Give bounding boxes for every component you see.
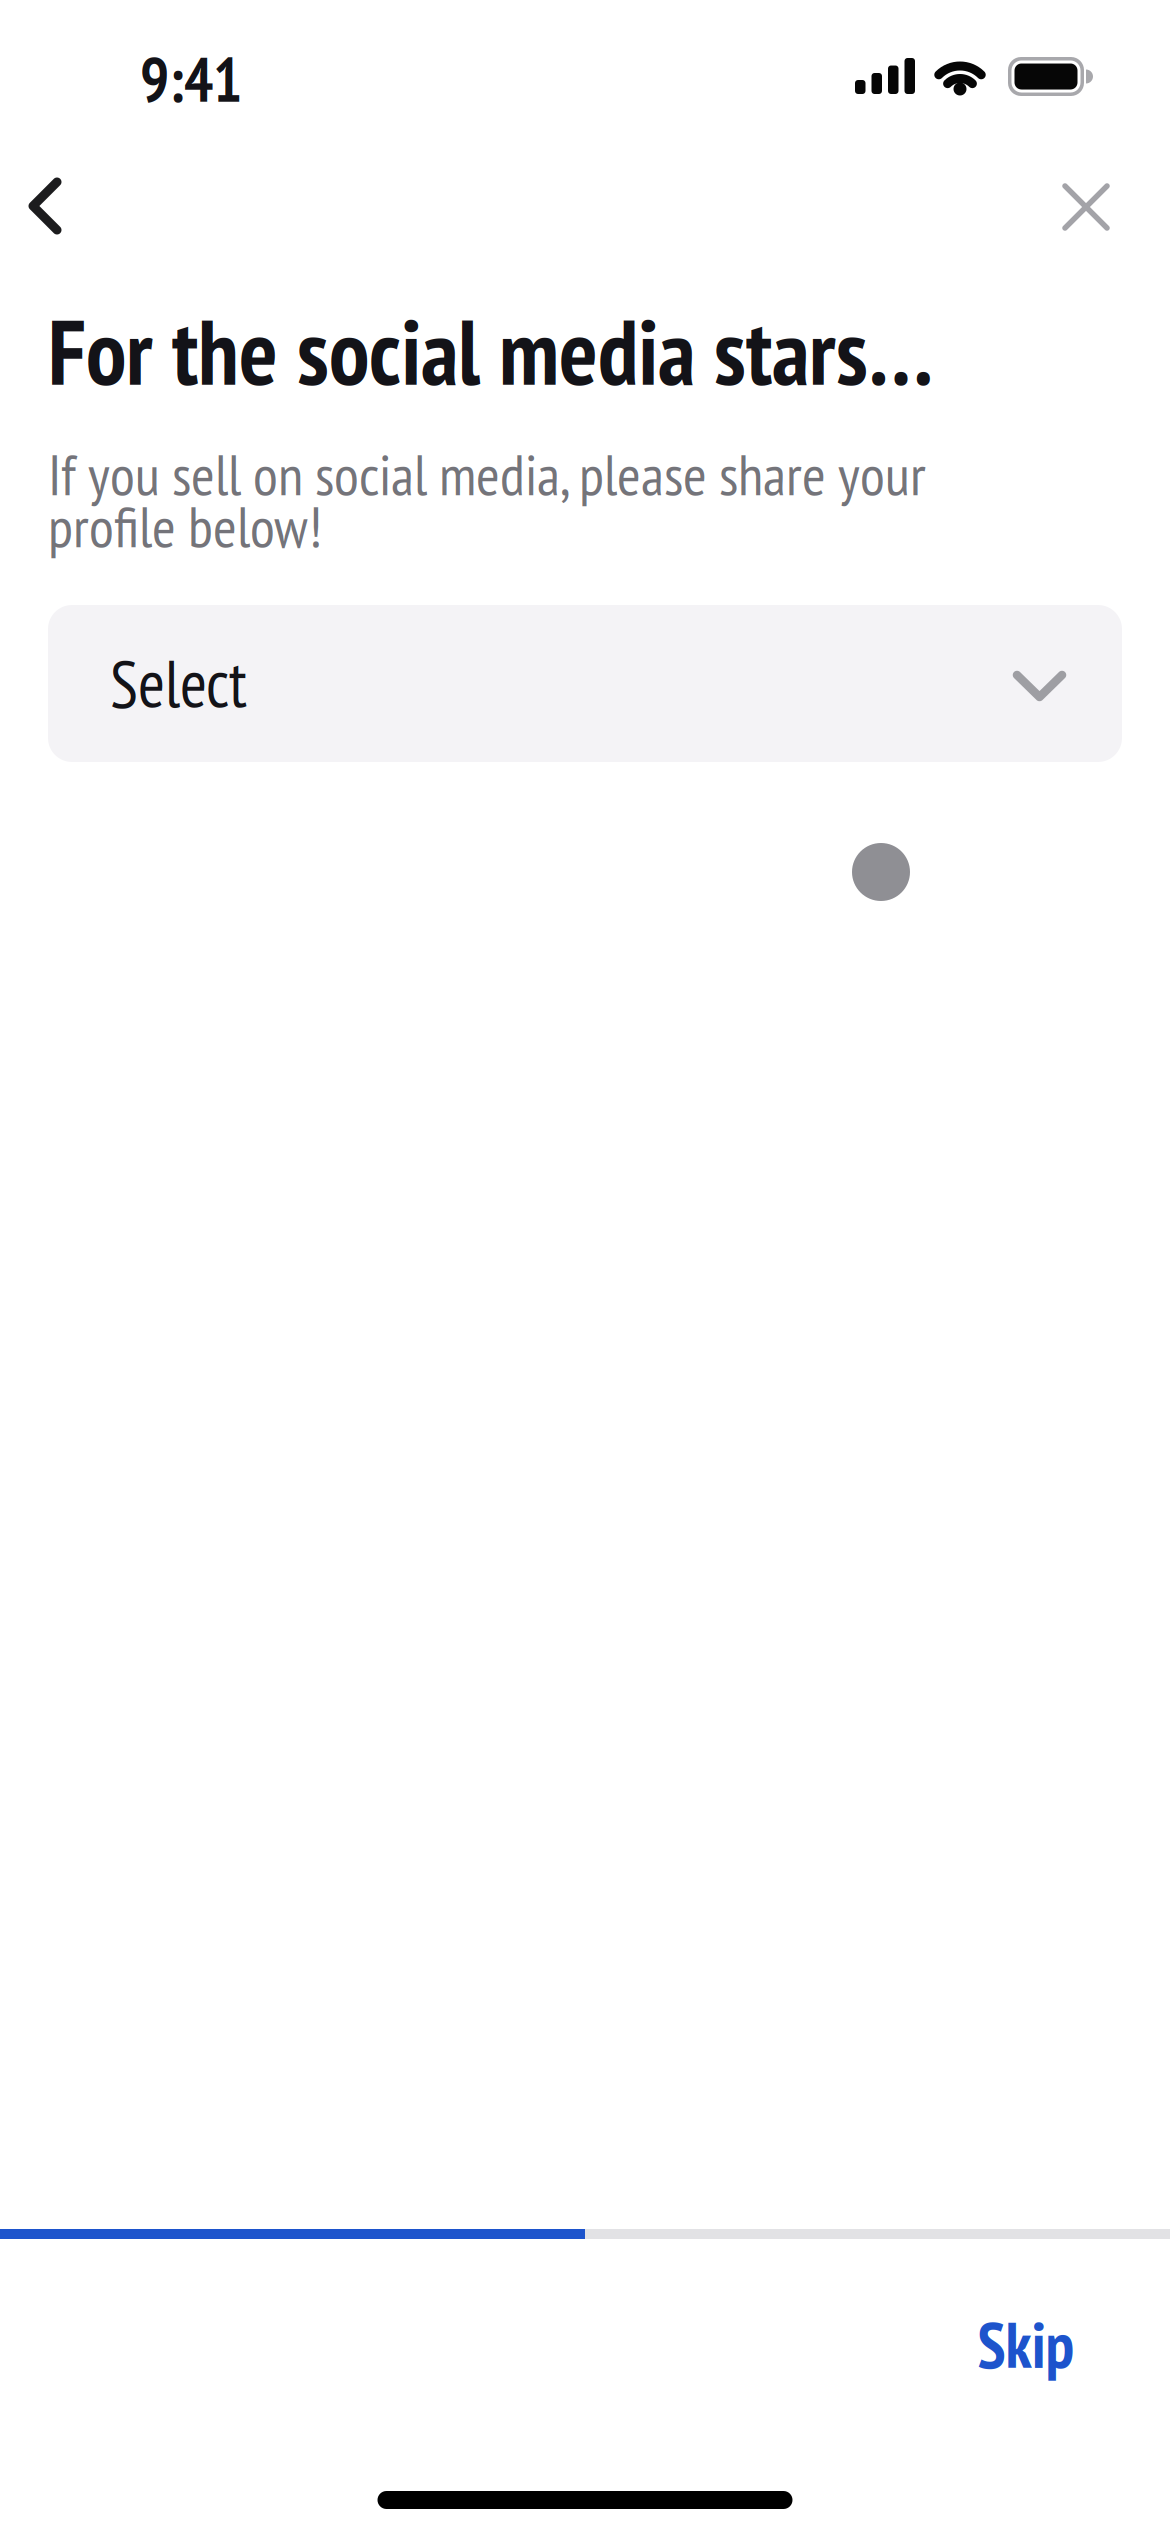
staticText: Select	[110, 653, 247, 712]
staticText: For the social media stars…	[48, 310, 933, 392]
staticText: 9:41	[140, 51, 242, 107]
button[interactable]: Skip	[977, 2315, 1074, 2373]
button[interactable]: Back	[0, 0, 1170, 2532]
button[interactable]: Select	[48, 605, 1122, 762]
staticText: If you sell on social media, please shar…	[48, 448, 926, 552]
staticText: Skip	[977, 2315, 1074, 2373]
button[interactable]: Close	[0, 0, 1170, 2532]
